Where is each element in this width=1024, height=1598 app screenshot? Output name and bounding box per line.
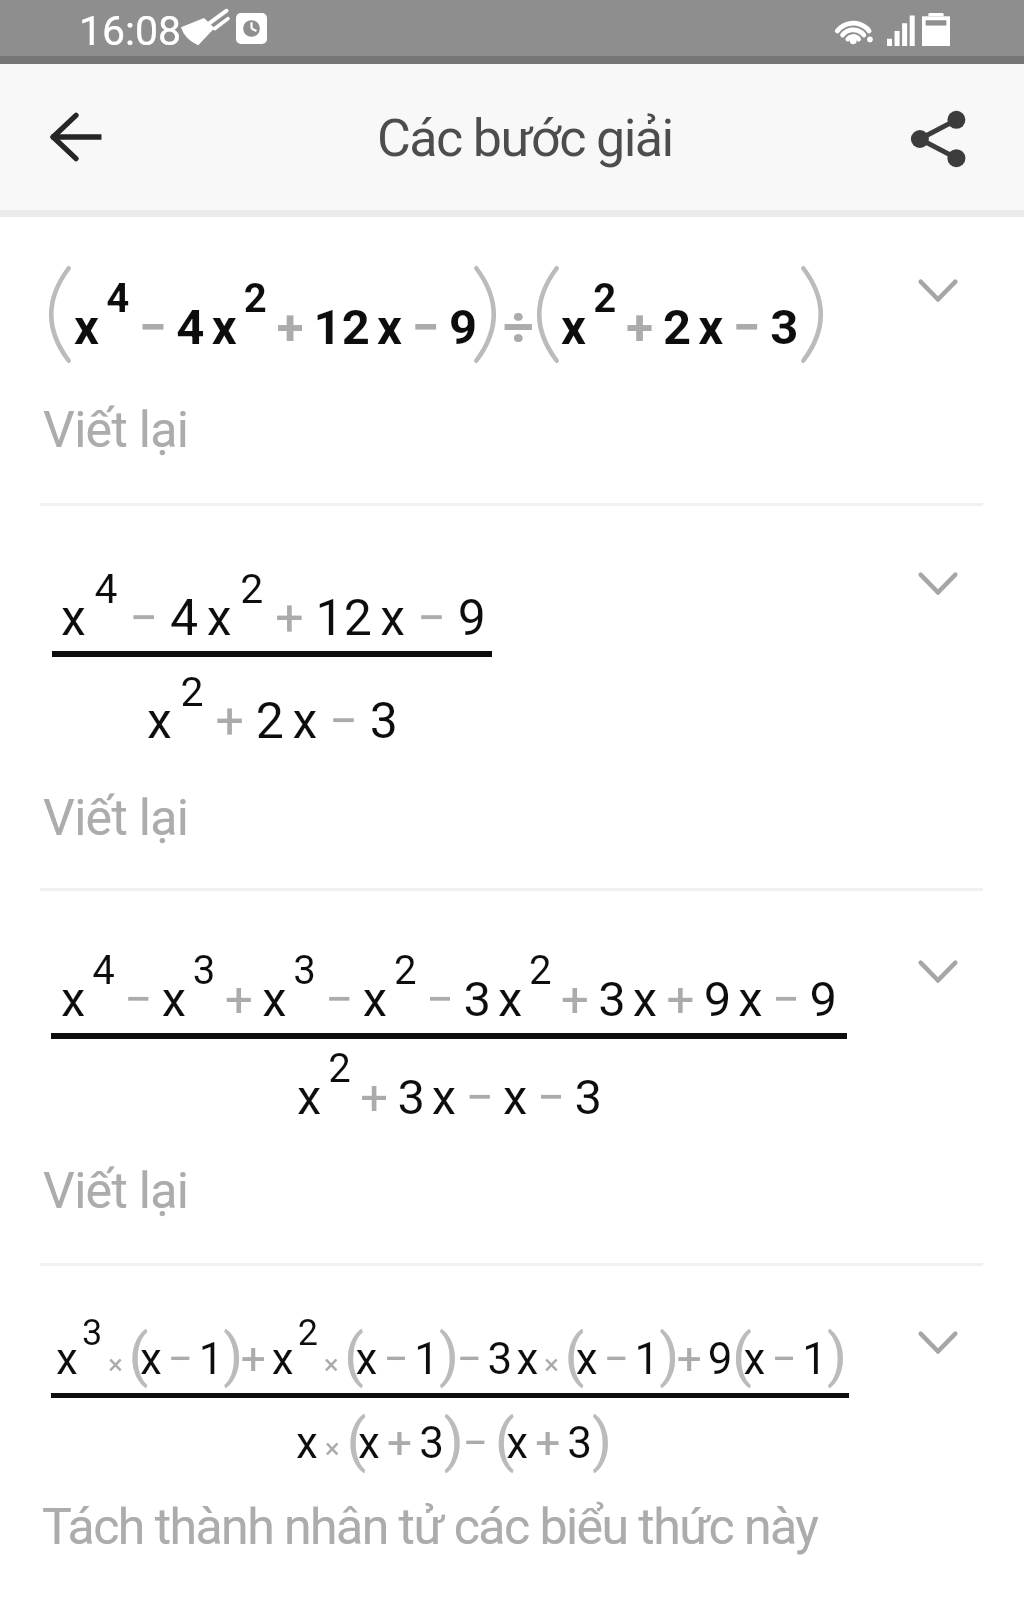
staticText: Tách thành nhân tử các biểu thức này [42, 1498, 818, 1557]
staticText: x 2 + 3 x − x − 3 [297, 1045, 602, 1126]
staticText: 16:08 [79, 7, 182, 55]
staticText: x 2 + 2 x − 3 [561, 275, 799, 356]
staticText: x 4 − 4 x 2 + 12 x − 9 [61, 565, 486, 647]
button[interactable]: x 4 − x 3 + x 3 − x 2 − 3 x 2 + 3 x + 9 … [0, 890, 1024, 1263]
staticText: x 4 − 4 x 2 + 12 x − 9 [74, 275, 478, 356]
button[interactable]: Expand step [890, 242, 986, 338]
button[interactable]: x 4 − 4 x 2 + 12 x − 9 [0, 210, 1024, 503]
button[interactable]: Share [889, 87, 989, 187]
button[interactable]: x 3 × (x − 1) + x 2 × (x − 1) − 3 x × (x… [0, 1265, 1024, 1597]
staticText: x 4 − x 3 + x 3 − x 2 − 3 x 2 + 3 x + 9 … [61, 947, 837, 1028]
staticText: x × (x + 3) − (x + 3) [296, 1407, 604, 1474]
staticText: ÷ [503, 295, 534, 358]
staticText: x 3 × (x − 1) + x 2 × (x − 1) − 3 x × (x… [56, 1312, 839, 1389]
staticText: x 2 + 2 x − 3 [147, 668, 398, 750]
staticText: Viết lại [43, 789, 189, 848]
staticText: Viết lại [43, 1162, 189, 1221]
button[interactable]: Expand step [890, 1294, 986, 1390]
button[interactable]: Back [26, 87, 126, 187]
button[interactable]: x 4 − 4 x 2 + 12 x − 9 [0, 505, 1024, 888]
staticText: Các bước giải [377, 108, 673, 169]
staticText: Viết lại [43, 401, 189, 460]
button[interactable]: Expand step [890, 923, 986, 1019]
button[interactable]: Expand step [890, 535, 986, 631]
